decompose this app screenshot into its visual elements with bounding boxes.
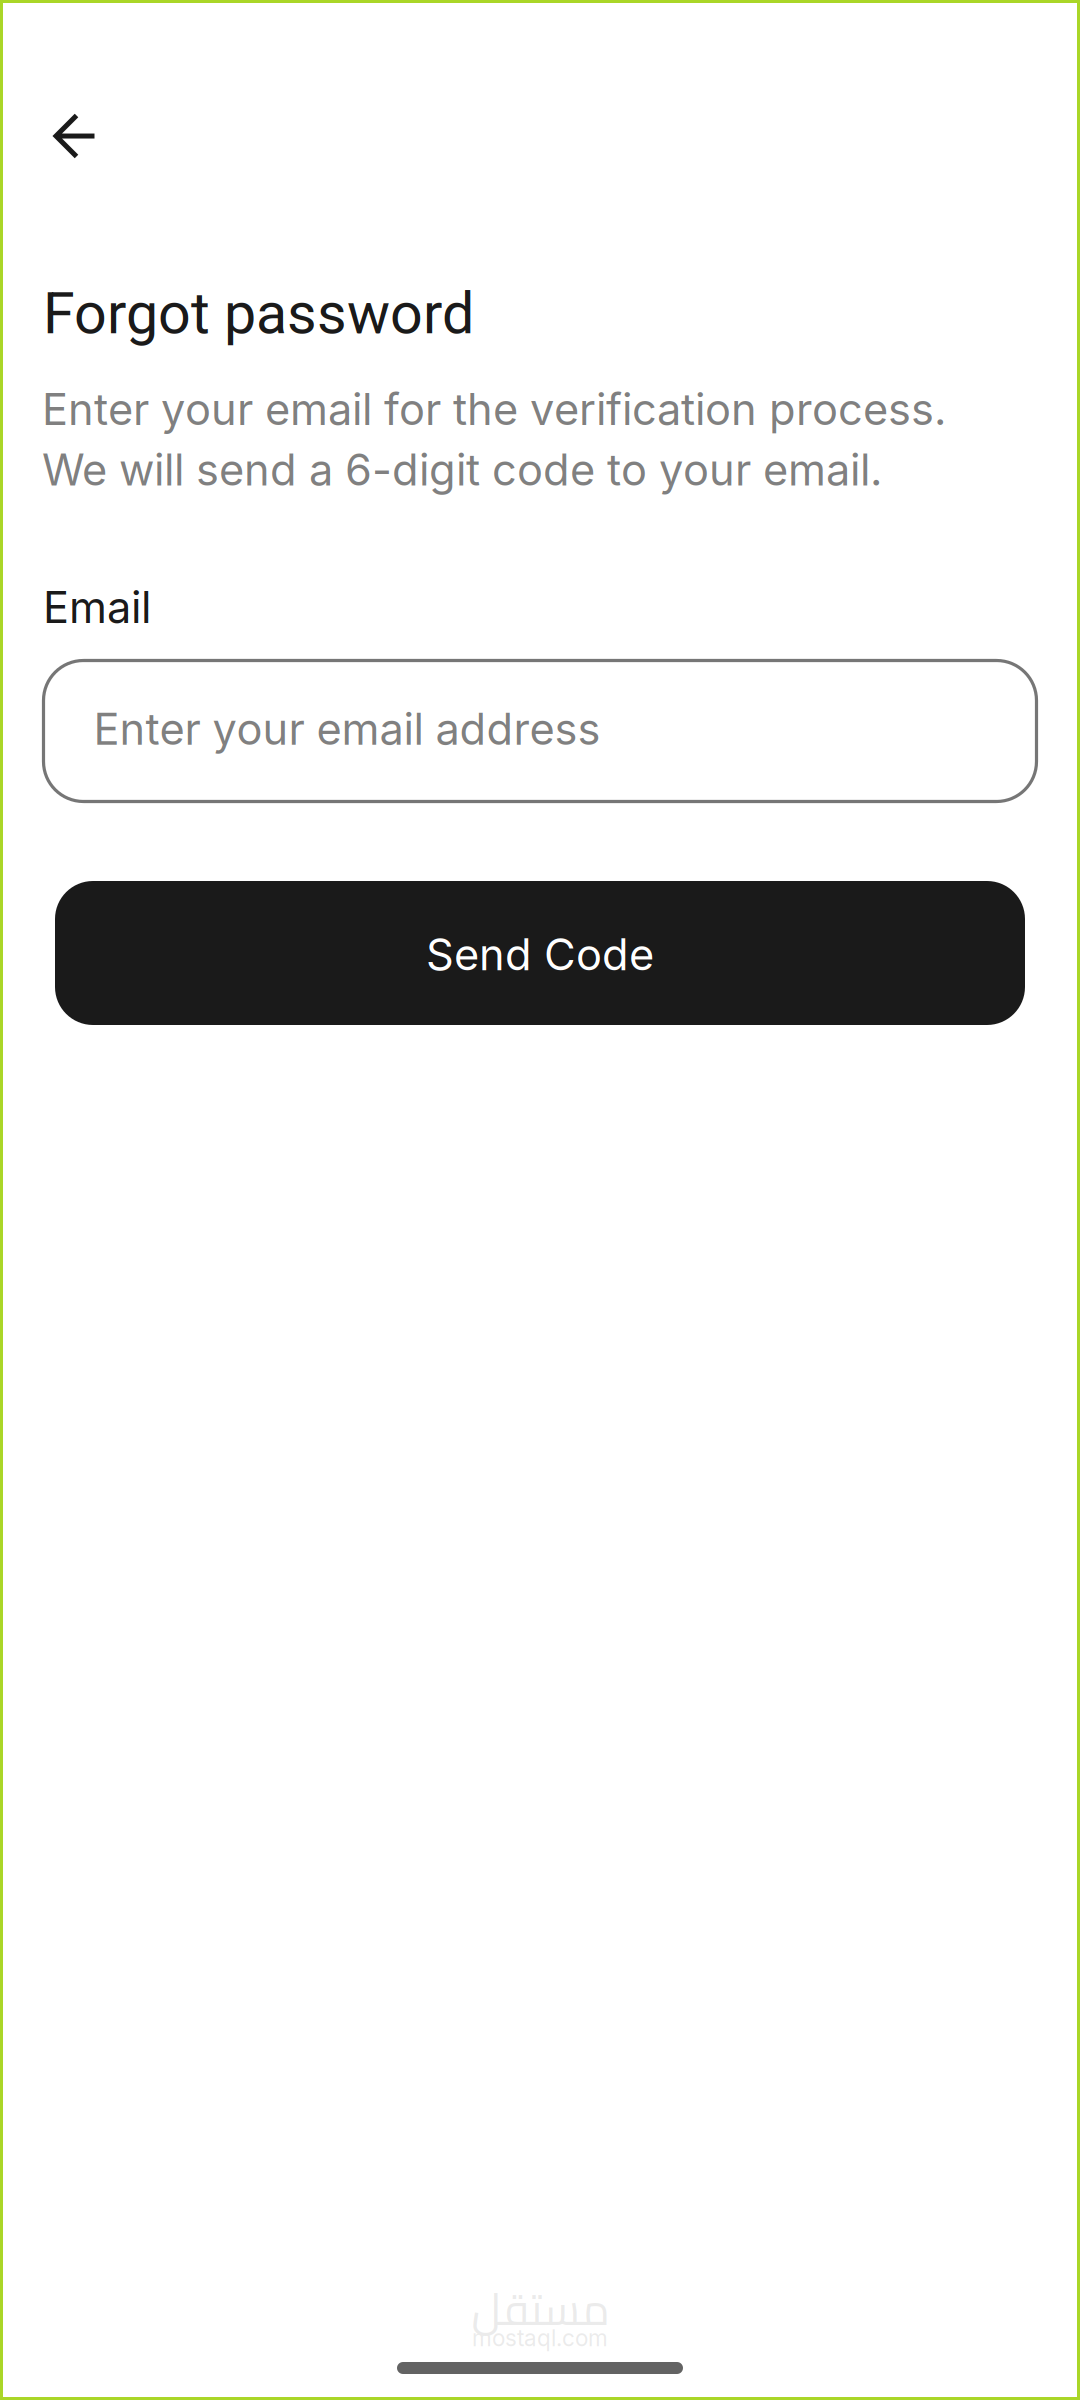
button[interactable]: Send Code <box>55 881 1025 1025</box>
staticText: Forgot password <box>43 280 474 347</box>
staticText: Email <box>43 581 151 633</box>
staticText: Enter your email address <box>93 703 600 755</box>
button[interactable]: Enter your email address <box>43 660 1036 801</box>
staticText: mostaql.com <box>472 2324 608 2352</box>
staticText: مستقل <box>471 2268 609 2350</box>
staticText: Send Code <box>426 928 654 981</box>
button[interactable]: Back <box>33 93 121 181</box>
staticText: Enter your email for the verification pr… <box>42 383 946 496</box>
